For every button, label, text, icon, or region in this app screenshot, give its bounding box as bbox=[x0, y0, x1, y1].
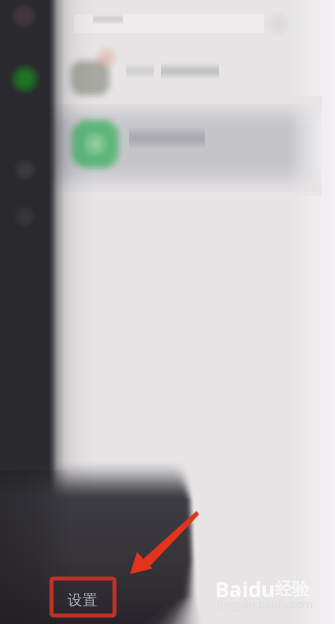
staticText: jingyan.baidu.com bbox=[217, 597, 312, 611]
staticText: Baidu bbox=[215, 575, 275, 603]
button[interactable]: 设置 bbox=[53, 583, 112, 616]
staticText: 设置 bbox=[67, 591, 97, 609]
staticText: 经验 bbox=[275, 578, 309, 600]
